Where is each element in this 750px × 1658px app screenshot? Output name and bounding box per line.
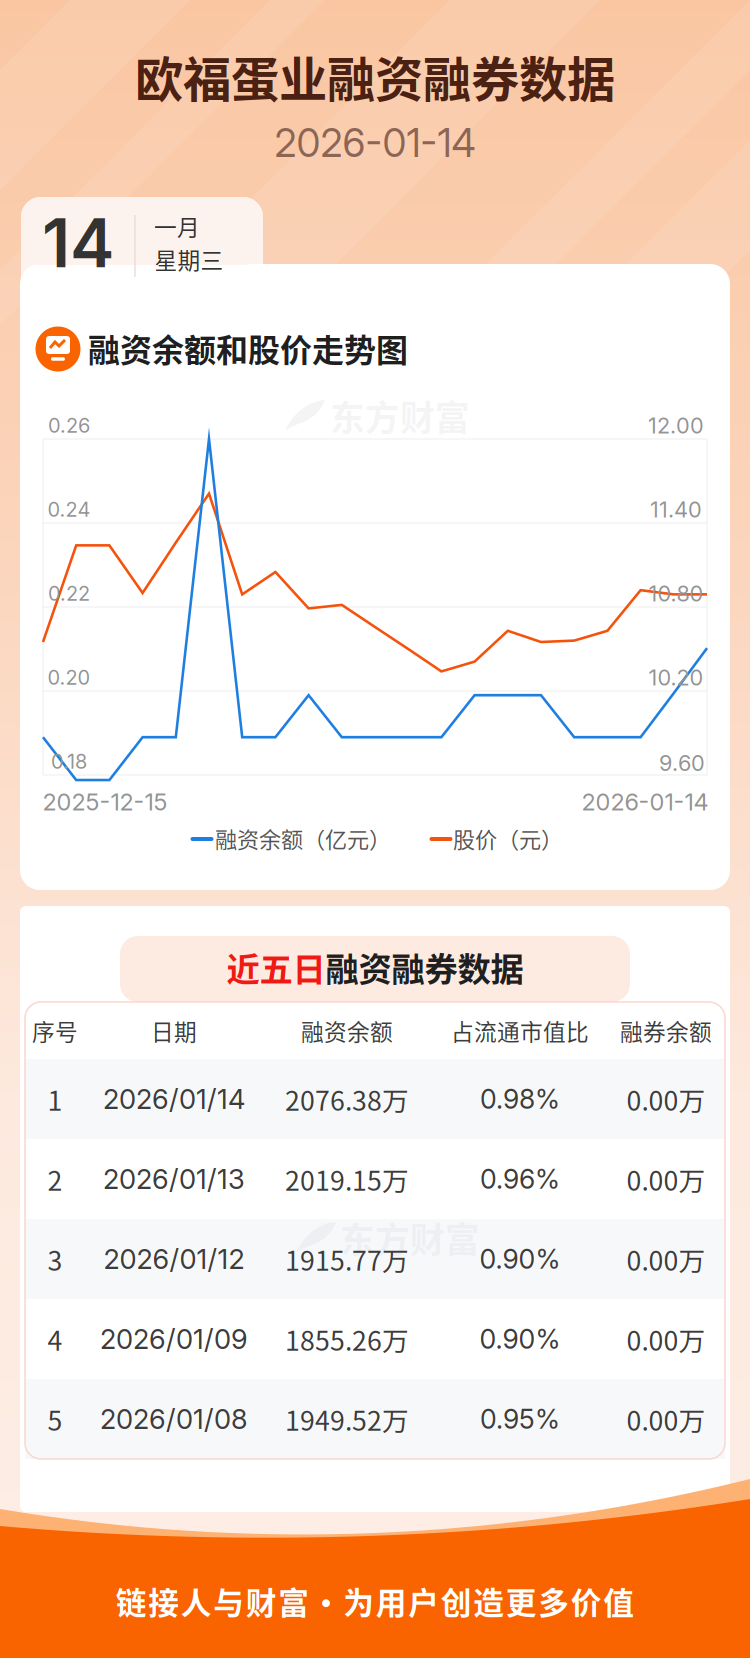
staticText: 10.80 xyxy=(648,580,703,607)
staticText: 14 xyxy=(42,203,114,283)
staticText: 股价（元） xyxy=(453,822,563,854)
staticText: 1949.52万 xyxy=(285,1400,409,1438)
staticText: 近五日 xyxy=(226,943,325,991)
staticText: 一月 xyxy=(154,210,200,242)
staticText: 融资余额 xyxy=(301,1014,393,1047)
staticText: 1855.26万 xyxy=(285,1320,409,1358)
staticText: 2 xyxy=(47,1160,62,1198)
staticText: 0.20 xyxy=(47,665,90,690)
staticText: 0.26 xyxy=(48,413,90,438)
staticText: 10.20 xyxy=(648,664,703,691)
staticText: 融资余额（亿元） xyxy=(215,822,391,854)
staticText: 东方财富 xyxy=(330,391,470,441)
staticText: 0.00万 xyxy=(626,1240,705,1278)
staticText: 0.96% xyxy=(480,1163,560,1195)
staticText: 5 xyxy=(47,1400,62,1438)
staticText: 2026-01-14 xyxy=(581,788,708,816)
staticText: 11.40 xyxy=(650,496,702,523)
staticText: 欧福蛋业融资融券数据 xyxy=(135,41,615,111)
staticText: 0.00万 xyxy=(626,1160,705,1198)
staticText: 2026/01/14 xyxy=(103,1082,245,1116)
staticText: 日期 xyxy=(151,1014,197,1047)
staticText: 0.22 xyxy=(48,581,90,606)
staticText: 0.00万 xyxy=(626,1080,705,1118)
staticText: 2026/01/08 xyxy=(100,1402,248,1436)
staticText: 1 xyxy=(47,1080,62,1118)
staticText: 0.00万 xyxy=(626,1400,705,1438)
staticText: 融资融券数据 xyxy=(325,943,523,991)
staticText: 4 xyxy=(47,1320,62,1358)
staticText: 占流通市值比 xyxy=(451,1014,589,1047)
staticText: 星期三 xyxy=(154,243,223,275)
staticText: 2026/01/09 xyxy=(100,1322,248,1356)
staticText: 0.00万 xyxy=(626,1320,705,1358)
staticText: 9.60 xyxy=(659,750,705,776)
staticText: 2019.15万 xyxy=(285,1160,409,1198)
staticText: 2026/01/13 xyxy=(103,1162,245,1196)
staticText: 2025-12-15 xyxy=(42,788,167,816)
staticText: 0.98% xyxy=(480,1083,560,1115)
staticText: 0.24 xyxy=(47,497,90,522)
staticText: 0.18 xyxy=(51,749,87,774)
staticText: 2026/01/12 xyxy=(103,1242,244,1276)
staticText: 东方财富 xyxy=(340,1213,480,1263)
staticText: 1915.77万 xyxy=(285,1240,409,1278)
staticText: 0.90% xyxy=(479,1323,560,1355)
staticText: 序号 xyxy=(32,1014,78,1047)
staticText: 链接人与财富·为用户创造更多价值 xyxy=(116,1579,634,1623)
staticText: 0.95% xyxy=(480,1403,560,1435)
staticText: 融资余额和股价走势图 xyxy=(88,325,408,371)
staticText: 3 xyxy=(47,1240,62,1278)
staticText: 12.00 xyxy=(648,412,704,439)
staticText: 融券余额 xyxy=(620,1014,712,1047)
staticText: 2026-01-14 xyxy=(274,120,475,166)
staticText: 2076.38万 xyxy=(285,1080,409,1118)
staticText: 0.90% xyxy=(479,1243,560,1275)
